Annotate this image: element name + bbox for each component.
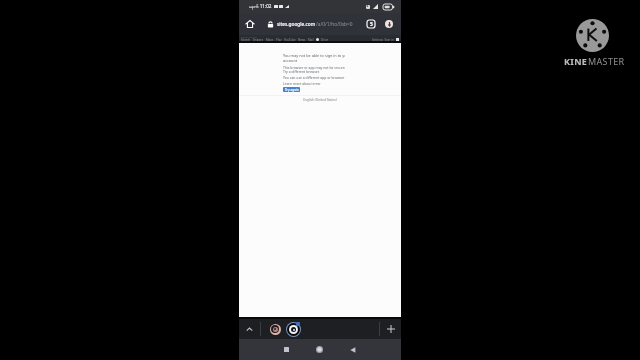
button[interactable]: Add keyboard [380, 319, 401, 339]
staticText: Gmail Images [241, 35, 258, 38]
button[interactable]: Settings Sign in [372, 38, 394, 42]
button[interactable]: Try again [283, 87, 300, 92]
button[interactable]: Images [253, 38, 264, 42]
button[interactable]: Home [310, 340, 329, 359]
button[interactable]: Search [241, 38, 251, 42]
staticText: You can use a different app or browser [283, 75, 345, 80]
button[interactable]: Drive [321, 38, 329, 42]
staticText: Learn more about error [283, 81, 321, 86]
button[interactable]: Expand keyboard picker [239, 319, 260, 339]
staticText: /a/0/1/ho/0sb=0 [316, 21, 353, 28]
button[interactable]: Tabs [362, 13, 378, 35]
button[interactable]: Recents [277, 340, 296, 359]
button[interactable]: Mail [308, 38, 314, 42]
button[interactable]: Home [239, 13, 260, 35]
staticText: This browser or app may not be secure. T… [283, 65, 345, 74]
staticText: English (United States) [239, 98, 401, 102]
staticText: sites.google.com [277, 21, 316, 28]
button[interactable]: Back [343, 340, 362, 359]
button[interactable]: Keyboard two [285, 321, 301, 337]
staticText: 5 [370, 21, 373, 28]
button[interactable]: Apps [316, 38, 319, 41]
staticText: You may not be able to sign in to your a… [283, 53, 345, 63]
staticText: KINE [564, 55, 588, 67]
button[interactable]: YouTube [284, 38, 296, 42]
staticText: MASTER [588, 55, 625, 67]
staticText: Try again [285, 88, 299, 92]
button[interactable]: Downloads [378, 13, 401, 35]
button[interactable]: sites.google.com [260, 13, 362, 35]
button[interactable]: Keyboard one [269, 323, 281, 335]
staticText: မနက် 11:02 [249, 3, 272, 10]
button[interactable]: Maps [266, 38, 274, 42]
button[interactable]: Play [276, 38, 282, 42]
button[interactable]: News [298, 38, 306, 42]
